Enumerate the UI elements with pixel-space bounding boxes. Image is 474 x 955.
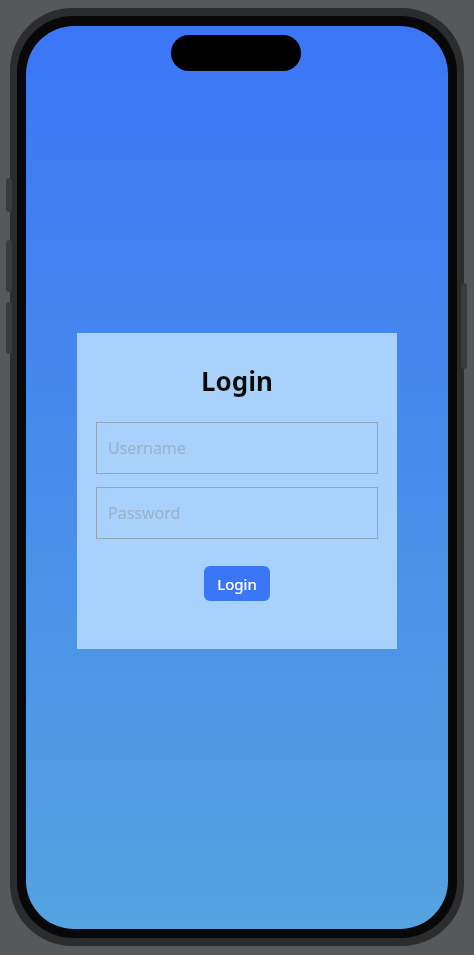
other: Dynamic Island bbox=[171, 35, 301, 71]
button[interactable]: Username bbox=[96, 422, 378, 474]
button[interactable]: Login bbox=[204, 566, 270, 601]
staticText: Username bbox=[108, 437, 186, 459]
staticText: Login bbox=[217, 574, 257, 594]
button[interactable]: Password bbox=[96, 487, 378, 539]
staticText: Login bbox=[201, 363, 273, 398]
staticText: Password bbox=[108, 502, 181, 524]
